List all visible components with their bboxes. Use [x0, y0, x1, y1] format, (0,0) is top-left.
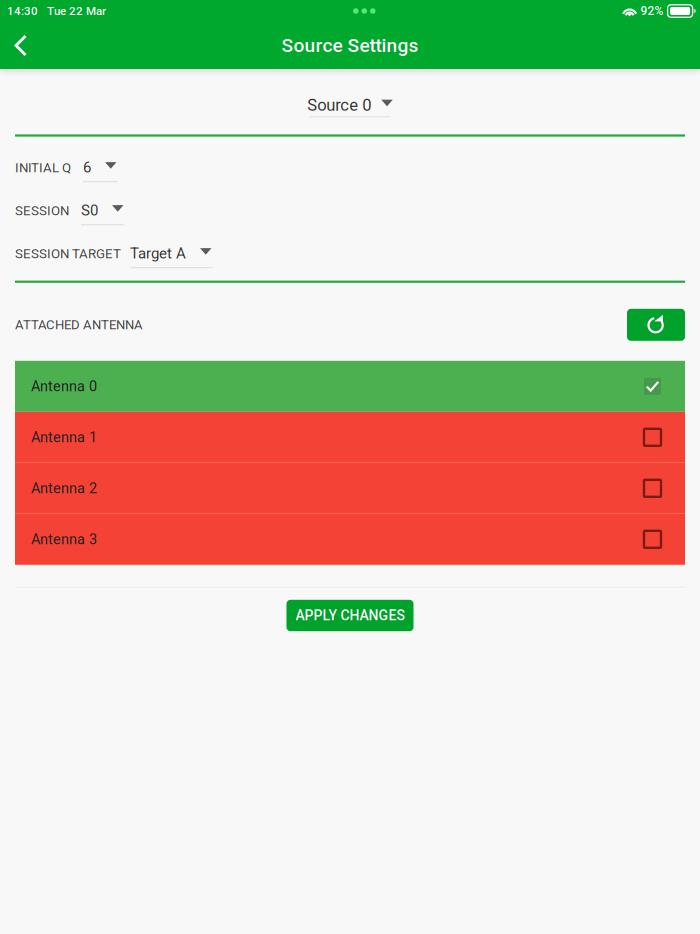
staticText: APPLY CHANGES	[295, 607, 404, 624]
staticText: Antenna 1	[31, 429, 97, 446]
button[interactable]: Antenna 0	[15, 361, 685, 412]
button[interactable]: Antenna 1	[15, 412, 685, 463]
staticText: 6	[83, 159, 91, 176]
staticText: Antenna 3	[31, 531, 97, 548]
staticText: Tue 22 Mar	[47, 4, 106, 18]
staticText: ATTACHED ANTENNA	[15, 317, 143, 332]
staticText: SESSION TARGET	[15, 246, 121, 261]
staticText: Source 0	[307, 95, 371, 115]
staticText: Antenna 0	[31, 378, 97, 395]
staticText: SESSION	[15, 203, 69, 218]
staticText: INITIAL Q	[15, 160, 71, 175]
button[interactable]: Target A	[121, 244, 212, 268]
staticText: Target A	[130, 245, 186, 262]
staticText: Antenna 2	[31, 480, 97, 497]
button[interactable]: Refresh antennas	[627, 309, 685, 341]
button[interactable]: APPLY CHANGES	[286, 600, 413, 631]
button[interactable]: Source 0	[307, 94, 393, 117]
staticText: S0	[81, 202, 98, 219]
button[interactable]: Back	[0, 22, 42, 69]
staticText: 92%	[641, 4, 664, 18]
staticText: 14:30	[7, 4, 38, 18]
button[interactable]: Antenna 3	[15, 514, 685, 565]
button[interactable]: S0	[69, 201, 124, 225]
button[interactable]: Antenna 2	[15, 463, 685, 514]
staticText: Source Settings	[281, 34, 418, 57]
button[interactable]: 6	[71, 158, 117, 182]
